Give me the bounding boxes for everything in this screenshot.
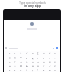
button[interactable]: ↓ <box>25 61 28 64</box>
staticText: … <box>54 57 56 60</box>
staticText: £ <box>14 69 16 72</box>
button[interactable]: × <box>13 52 16 55</box>
staticText: ♥ <box>20 65 22 68</box>
button[interactable]: % <box>53 69 56 72</box>
staticText: ⇔ <box>43 61 45 64</box>
staticText: ÷ <box>20 52 22 55</box>
button[interactable]: ¥ <box>19 69 22 72</box>
staticText: → <box>20 61 22 64</box>
staticText: × <box>14 52 16 55</box>
button[interactable]: ‡ <box>42 57 45 60</box>
staticText: ✗ <box>54 65 56 68</box>
staticText: ♦ <box>37 65 39 68</box>
button[interactable]: ♪ <box>42 65 45 68</box>
staticText: • <box>49 57 50 60</box>
button[interactable]: ₹ <box>36 69 39 72</box>
staticText: ¢ <box>26 69 28 72</box>
staticText: † <box>37 57 39 60</box>
staticText: π <box>32 52 34 55</box>
staticText: ∞ <box>43 52 45 55</box>
staticText: ¥ <box>20 69 22 72</box>
staticText: ₩ <box>49 69 51 72</box>
staticText: ™ <box>20 57 22 60</box>
staticText: ‡ <box>43 57 45 60</box>
button[interactable]: ♠ <box>31 65 34 68</box>
button[interactable]: π <box>31 52 34 55</box>
button[interactable]: ± <box>8 52 11 55</box>
button[interactable]: ✗ <box>53 65 56 68</box>
button[interactable]: ∑ <box>36 52 39 55</box>
button[interactable]: ⊆ <box>53 61 56 64</box>
button[interactable]: ♣ <box>25 65 28 68</box>
button[interactable]: Send <box>5 45 59 51</box>
staticText: ₹ <box>37 69 39 72</box>
button[interactable]: § <box>25 57 28 60</box>
button[interactable]: ⇔ <box>42 61 45 64</box>
staticText: ♣ <box>26 65 28 68</box>
staticText: ↔ <box>32 61 34 64</box>
button[interactable]: ☆ <box>13 65 16 68</box>
button[interactable]: ₩ <box>48 69 51 72</box>
button[interactable]: ★ <box>8 65 11 68</box>
button[interactable]: ← <box>8 61 11 64</box>
staticText: ® <box>14 57 16 60</box>
button[interactable]: ✓ <box>48 65 51 68</box>
staticText: ∑ <box>37 52 39 55</box>
button[interactable]: ÷ <box>19 52 22 55</box>
button[interactable]: ® <box>13 57 16 60</box>
button[interactable]: £ <box>13 69 16 72</box>
button[interactable]: ₽ <box>42 69 45 72</box>
staticText: ⊆ <box>54 61 56 64</box>
staticText: √ <box>26 52 28 55</box>
staticText: ∈ <box>49 61 51 64</box>
button[interactable]: • <box>48 57 51 60</box>
button[interactable]: © <box>8 57 11 60</box>
button[interactable]: ♦ <box>36 65 39 68</box>
staticText: © <box>9 57 11 60</box>
button[interactable]: √ <box>25 52 28 55</box>
button[interactable]: † <box>36 57 39 60</box>
staticText: ★ <box>9 65 11 68</box>
staticText: in any app <box>24 3 41 7</box>
staticText: ↑ <box>14 61 16 64</box>
button[interactable]: … <box>53 57 56 60</box>
button[interactable]: ↔ <box>31 61 34 64</box>
staticText: ↓ <box>26 61 28 64</box>
button[interactable]: € <box>8 69 11 72</box>
staticText: ¶ <box>32 57 34 60</box>
staticText: ♠ <box>32 65 34 68</box>
button[interactable]: ¶ <box>31 57 34 60</box>
staticText: ✓ <box>49 65 51 68</box>
staticText: ≈ <box>54 52 56 55</box>
staticText: ≠ <box>49 52 51 55</box>
staticText: ♪ <box>43 65 45 68</box>
button[interactable]: ♥ <box>19 65 22 68</box>
staticText: ± <box>9 52 11 55</box>
button[interactable]: ≈ <box>53 52 56 55</box>
button[interactable]: $ <box>31 69 34 72</box>
button[interactable]: ∈ <box>48 61 51 64</box>
staticText: $ <box>32 69 34 72</box>
button[interactable]: ≠ <box>48 52 51 55</box>
button[interactable]: ⇒ <box>36 61 39 64</box>
staticText: ⇒ <box>37 61 39 64</box>
button[interactable]: → <box>19 61 22 64</box>
button[interactable]: ¢ <box>25 69 28 72</box>
button[interactable]: ↑ <box>13 61 16 64</box>
staticText: ☆ <box>14 65 16 68</box>
button[interactable]: ∞ <box>42 52 45 55</box>
staticText: ₽ <box>43 69 45 72</box>
staticText: Type special symbols <box>19 1 46 5</box>
staticText: % <box>54 69 56 72</box>
button[interactable]: ™ <box>19 57 22 60</box>
staticText: ← <box>9 61 11 64</box>
staticText: € <box>9 69 11 72</box>
staticText: § <box>26 57 28 60</box>
